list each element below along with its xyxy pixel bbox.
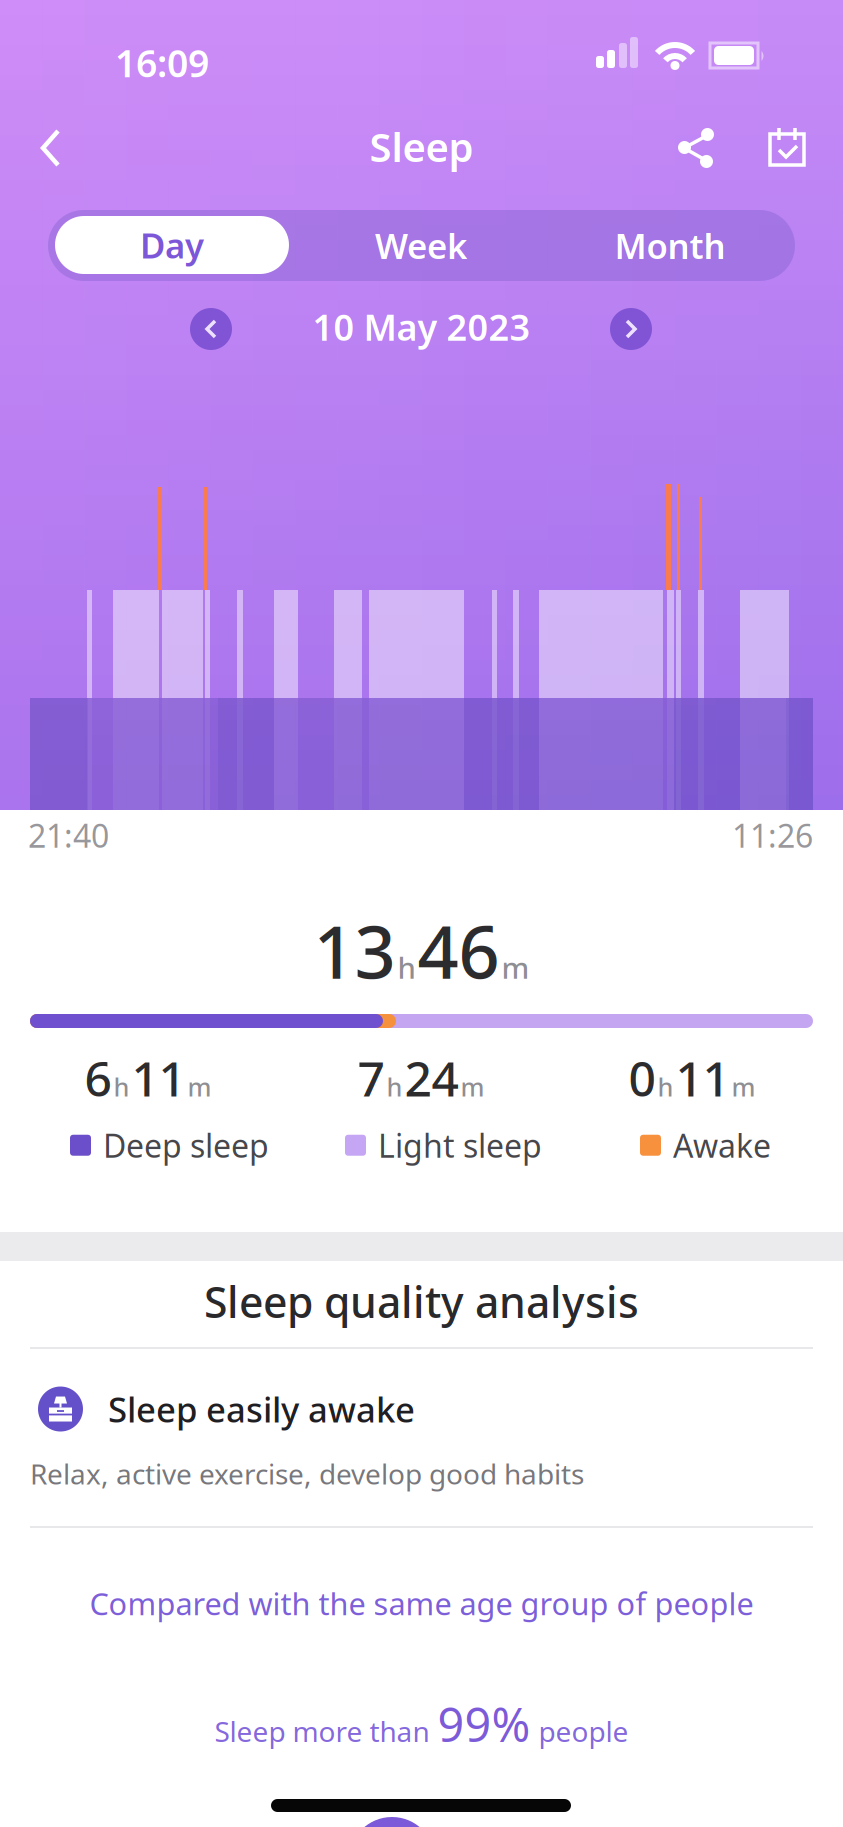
staticText: 11 [675,1046,729,1110]
staticText: 13 [313,903,395,999]
staticText: 10 May 2023 [312,303,530,351]
staticText: Light sleep [378,1124,542,1166]
staticText: m [187,1070,211,1103]
staticText: 24 [404,1046,458,1110]
staticText: 46 [417,903,499,999]
staticText: Day [140,222,204,268]
staticText: Sleep more than [214,1713,429,1750]
staticText: 6 [84,1046,111,1110]
staticText: 11:26 [732,814,813,856]
staticText: Week [375,222,467,268]
staticText: m [501,948,529,987]
staticText: 21:40 [28,814,109,856]
staticText: m [460,1070,484,1103]
button[interactable]: Day [55,216,289,274]
staticText: Deep sleep [103,1124,269,1166]
button[interactable] [610,308,652,350]
staticText: Compared with the same age group of peop… [89,1583,753,1624]
button[interactable] [190,308,232,350]
staticText: 99% [437,1693,530,1755]
staticText: h [386,1070,402,1103]
button[interactable]: Month [580,210,760,281]
button[interactable]: Sleep easily awake [38,1386,821,1432]
staticText: h [397,948,415,987]
staticText: Relax, active exercise, develop good hab… [30,1455,584,1492]
button[interactable]: Week [331,210,511,281]
staticText: m [731,1070,755,1103]
staticText: h [113,1070,129,1103]
button[interactable]: Compared with the same age group of peop… [0,1583,843,1624]
staticText: Month [614,222,725,268]
staticText: 11 [131,1046,185,1110]
staticText: 0 [628,1046,655,1110]
staticText: people [538,1713,628,1750]
staticText: Awake [673,1124,771,1166]
staticText: 16:09 [115,38,209,88]
staticText: 7 [357,1046,384,1110]
staticText: Sleep quality analysis [204,1273,639,1330]
staticText: h [657,1070,673,1103]
staticText: Sleep easily awake [108,1386,415,1432]
staticText: Sleep [369,120,473,173]
